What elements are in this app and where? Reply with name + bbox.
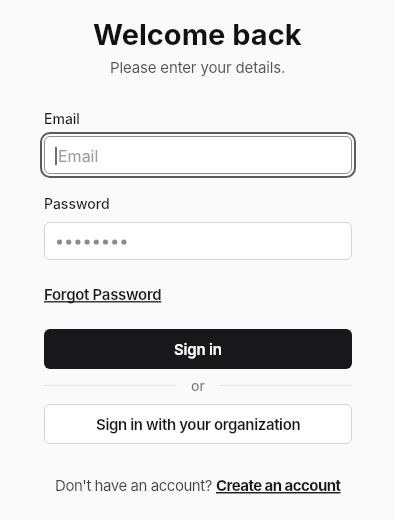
button[interactable]: [44, 222, 352, 260]
staticText: Sign in with your organization: [96, 415, 301, 433]
staticText: Email: [58, 146, 99, 165]
staticText: Please enter your details.: [110, 58, 286, 76]
button[interactable]: Sign in with your organization: [44, 404, 352, 444]
staticText: Email: [44, 110, 80, 127]
button[interactable]: Forgot Password: [44, 285, 162, 303]
staticText: Sign in: [174, 340, 222, 358]
button[interactable]: Create an account: [216, 476, 341, 494]
staticText: or: [191, 377, 205, 393]
button[interactable]: Email: [44, 136, 352, 174]
button[interactable]: Sign in: [44, 329, 352, 369]
staticText: Welcome back: [93, 17, 302, 52]
staticText: Don't have an account?: [55, 476, 216, 494]
staticText: Password: [44, 195, 110, 212]
